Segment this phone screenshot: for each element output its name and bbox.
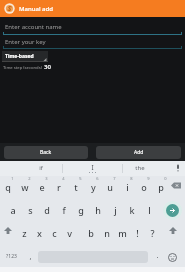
staticText: Enter your key — [5, 38, 46, 46]
button[interactable] — [2, 22, 183, 36]
staticText: Back — [40, 149, 52, 156]
staticText: d — [44, 204, 50, 216]
button[interactable] — [0, 161, 185, 176]
staticText: h — [95, 204, 101, 216]
staticText: g — [78, 204, 84, 216]
button[interactable]: Add — [96, 146, 181, 159]
staticText: n — [104, 227, 110, 239]
button[interactable] — [0, 245, 22, 268]
staticText: 5 — [79, 176, 82, 181]
button[interactable]: Manual add — [0, 0, 185, 17]
staticText: the — [135, 164, 145, 172]
staticText: v — [67, 227, 72, 239]
staticText: if — [39, 164, 43, 172]
button[interactable] — [164, 222, 185, 245]
staticText: 6 — [96, 176, 99, 181]
staticText: 8 — [130, 176, 133, 181]
staticText: ! — [136, 227, 139, 239]
button[interactable] — [0, 222, 17, 245]
staticText: 9 — [147, 176, 150, 181]
staticText: s — [28, 204, 33, 216]
staticText: ? — [150, 227, 155, 239]
button[interactable] — [166, 177, 185, 199]
button[interactable]: Time-based — [2, 51, 48, 62]
staticText: f — [62, 204, 66, 216]
staticText: r — [57, 181, 61, 193]
staticText: 3 — [45, 176, 48, 181]
staticText: Enter account name — [5, 23, 62, 31]
staticText: j — [114, 204, 117, 216]
button[interactable] — [2, 37, 183, 50]
staticText: q — [5, 181, 11, 193]
staticText: . — [156, 250, 159, 260]
staticText: c — [52, 227, 57, 239]
staticText: m — [118, 227, 127, 239]
staticText: ?123 — [6, 253, 17, 260]
staticText: Time-based — [5, 53, 34, 60]
staticText: p — [158, 181, 164, 193]
staticText: 2 — [28, 176, 31, 181]
staticText: 30 — [44, 63, 51, 71]
staticText: o — [141, 181, 147, 193]
staticText: 4 — [62, 176, 65, 181]
staticText: , — [29, 251, 32, 261]
staticText: y — [91, 181, 96, 193]
staticText: u — [107, 181, 113, 193]
staticText: k — [129, 204, 135, 216]
staticText: x — [37, 227, 42, 239]
button[interactable]: Back — [4, 146, 88, 159]
staticText: Add — [134, 149, 144, 156]
staticText: i — [126, 181, 129, 193]
staticText: a — [10, 204, 16, 216]
staticText: I — [91, 163, 94, 172]
staticText: b — [88, 227, 94, 239]
staticText: w — [21, 181, 29, 193]
staticText: e — [39, 181, 45, 193]
button[interactable] — [163, 245, 185, 268]
staticText: Manual add — [19, 5, 53, 13]
staticText: Time step (seconds) — [3, 65, 42, 71]
staticText: t — [74, 181, 78, 193]
staticText: 0 — [164, 176, 167, 181]
staticText: 7 — [113, 176, 116, 181]
staticText: z — [22, 227, 27, 239]
staticText: l — [148, 204, 151, 216]
button[interactable] — [166, 204, 179, 217]
staticText: 1 — [11, 176, 14, 181]
